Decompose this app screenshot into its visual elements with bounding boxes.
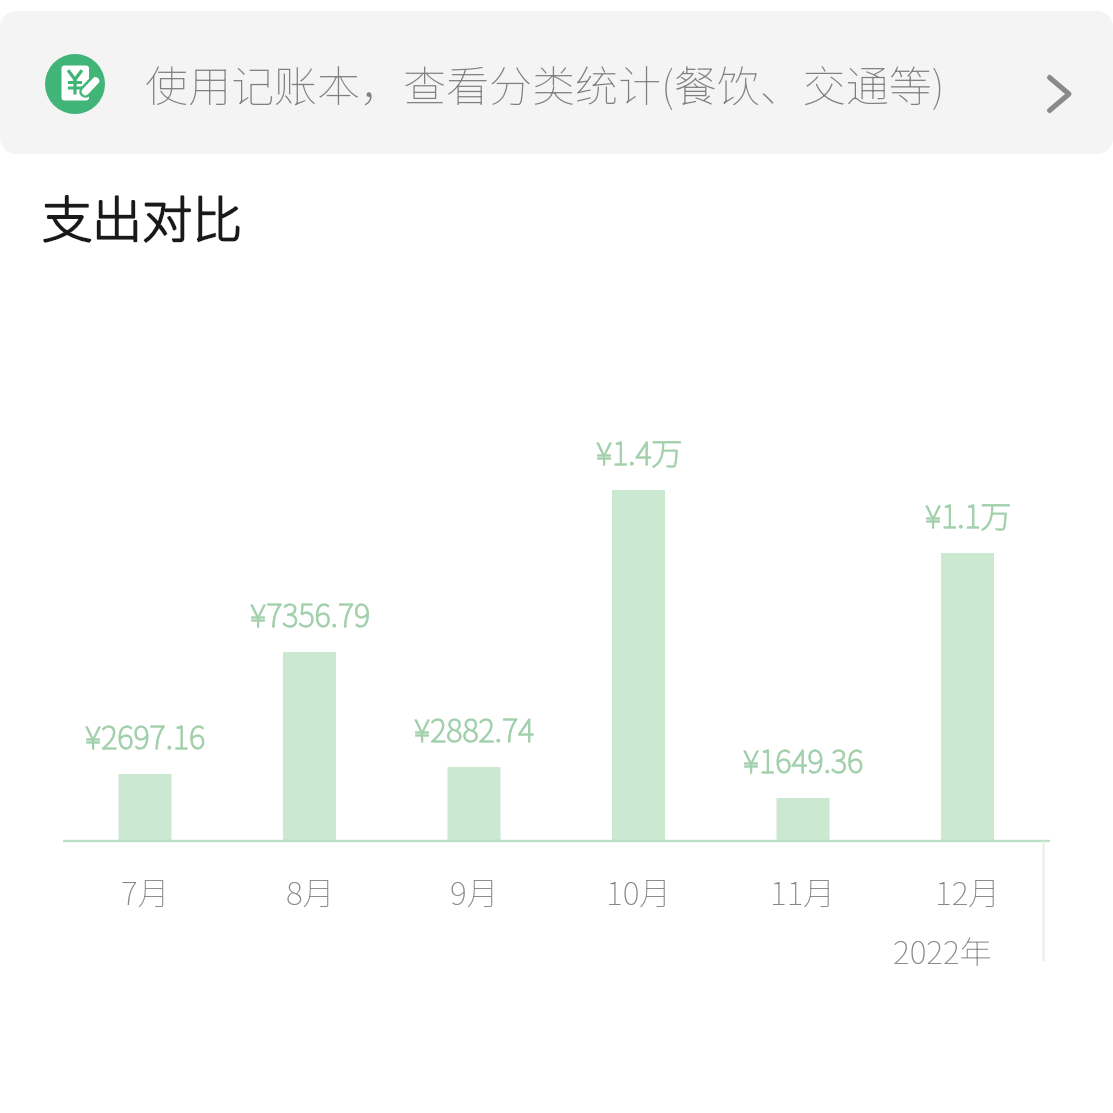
staticText: ¥1.1万 xyxy=(925,492,1012,537)
staticText: ¥1.4万 xyxy=(596,429,683,474)
staticText: 使用记账本，查看分类统计(餐饮、交通等) xyxy=(145,52,945,114)
staticText: ¥2882.74 xyxy=(414,706,535,751)
staticText: 9月 xyxy=(450,868,499,914)
staticText: ¥2697.16 xyxy=(85,713,206,758)
staticText: 12月 xyxy=(935,868,1001,914)
staticText: 支出对比 xyxy=(42,180,242,250)
staticText: 支出对比 xyxy=(42,180,242,250)
staticText: ¥2882.74 xyxy=(414,706,535,751)
staticText: ¥1.1万 xyxy=(925,492,1012,537)
staticText: 7月 xyxy=(121,868,170,914)
staticText: ¥7356.79 xyxy=(250,591,371,636)
staticText: 10月 xyxy=(606,868,672,914)
staticText: ¥7356.79 xyxy=(250,591,371,636)
staticText: ¥2697.16 xyxy=(85,713,206,758)
staticText: 2022年 xyxy=(893,927,992,973)
staticText: 11月 xyxy=(770,868,836,914)
staticText: ¥1649.36 xyxy=(743,737,864,782)
staticText: ¥1.4万 xyxy=(596,429,683,474)
staticText: ¥1649.36 xyxy=(743,737,864,782)
button[interactable]: 使用记账本，查看分类统计(餐饮、交通等) xyxy=(0,11,1113,154)
staticText: 8月 xyxy=(286,868,335,914)
